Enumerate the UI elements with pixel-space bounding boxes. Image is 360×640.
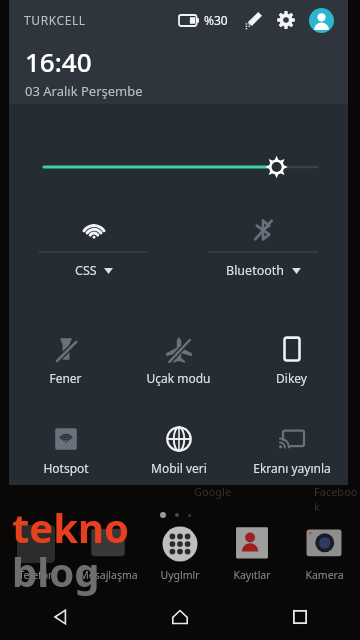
staticText: CSS xyxy=(75,262,97,279)
staticText: TURKCELL xyxy=(24,12,86,28)
button[interactable]: Mesajlaşma xyxy=(72,525,144,589)
button[interactable]: Home xyxy=(120,594,240,640)
staticText: Uyglmlr xyxy=(160,568,200,582)
staticText: Kayıtlar xyxy=(233,568,271,582)
staticText: Mesajlaşma xyxy=(79,568,138,582)
staticText: Mobil veri xyxy=(151,460,207,476)
staticText: %30 xyxy=(204,12,228,28)
button[interactable]: Uçak modu xyxy=(122,328,235,404)
staticText: Hotspot xyxy=(43,460,89,476)
button[interactable]: Fener xyxy=(9,328,122,404)
staticText: Telefon xyxy=(18,568,55,582)
staticText: blog xyxy=(12,544,100,598)
staticText: 16:40 xyxy=(25,44,92,79)
staticText: Dikey xyxy=(276,370,307,386)
staticText: Fener xyxy=(49,370,82,386)
button[interactable]: Hotspot xyxy=(9,418,122,485)
button[interactable]: Bluetooth xyxy=(178,214,348,279)
button[interactable]: Kayıtlar xyxy=(216,525,288,589)
button[interactable]: Kamera xyxy=(288,525,360,589)
button[interactable]: Ekranı yayınla xyxy=(235,418,348,485)
staticText: Uçak modu xyxy=(146,370,211,386)
staticText: Google xyxy=(194,484,232,499)
button[interactable]: Settings xyxy=(274,8,298,32)
button[interactable]: Brightness xyxy=(9,150,348,184)
button[interactable]: User xyxy=(309,8,334,33)
staticText: Kamera xyxy=(305,568,344,582)
button[interactable]: Uyglmlr xyxy=(144,525,216,589)
button[interactable]: Telefon xyxy=(0,525,72,589)
staticText: Facebook xyxy=(314,484,360,514)
button[interactable]: Back xyxy=(0,594,120,640)
button[interactable]: Dikey xyxy=(235,328,348,404)
staticText: Bluetooth xyxy=(226,262,285,279)
button[interactable]: Edit xyxy=(242,9,264,31)
button[interactable]: Mobil veri xyxy=(122,418,235,485)
button[interactable]: CSS xyxy=(9,214,178,279)
button[interactable]: Recents xyxy=(240,594,360,640)
staticText: Ekranı yayınla xyxy=(253,460,331,476)
staticText: 03 Aralık Perşembe xyxy=(25,82,143,100)
staticText: tekno xyxy=(12,500,130,554)
